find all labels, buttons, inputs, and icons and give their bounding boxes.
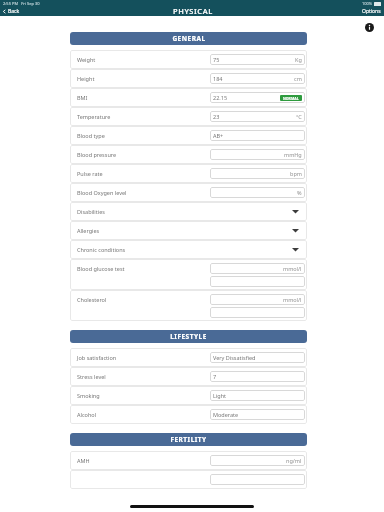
button[interactable]: 22.15 (210, 92, 305, 103)
staticText: Blood type (77, 132, 105, 139)
staticText: % (297, 189, 302, 196)
button[interactable]: bpm (210, 168, 305, 179)
staticText: 184 (213, 75, 223, 82)
button[interactable]: 75 (210, 54, 305, 65)
button[interactable]: Options (362, 6, 384, 16)
staticText: Temperature (77, 113, 111, 120)
staticText: mmol/l (283, 296, 302, 303)
staticText: GENERAL (172, 34, 206, 43)
staticText: °C (296, 113, 302, 120)
button[interactable]: Disabilities (70, 202, 307, 221)
button[interactable]: FERTILITY (70, 433, 307, 446)
button[interactable]: Height (70, 69, 307, 88)
button[interactable]: Blood pressure (70, 145, 307, 164)
staticText: Smoking (77, 392, 100, 399)
button[interactable]: 184 (210, 73, 305, 84)
staticText: Blood Oxygen level (77, 189, 127, 196)
staticText: NORMAL (283, 96, 299, 101)
button[interactable]: 23 (210, 111, 305, 122)
staticText: 23 (213, 113, 220, 120)
button[interactable]: Temperature (70, 107, 307, 126)
button[interactable]: mmol/l (210, 294, 305, 305)
staticText: AB+ (213, 132, 224, 139)
staticText: Chronic conditions (77, 246, 126, 253)
staticText: 75 (213, 56, 220, 63)
button[interactable]: LIFESTYLE (70, 330, 307, 343)
button[interactable]: 7 (210, 371, 305, 382)
button[interactable]: Moderate (210, 409, 305, 420)
button[interactable]: ng/ml (210, 455, 305, 466)
button[interactable]: AB+ (210, 130, 305, 141)
staticText: Height (77, 75, 95, 82)
button[interactable]: Alcohol (70, 405, 307, 424)
staticText: Options (362, 8, 381, 15)
button[interactable]: Cholesterol (70, 290, 307, 321)
staticText: mmHg (284, 151, 302, 158)
staticText: Pulse rate (77, 170, 103, 177)
staticText: PHYSICAL (173, 6, 213, 16)
staticText: Disabilities (77, 208, 105, 215)
button[interactable]: Back (0, 6, 24, 16)
staticText: 7 (213, 373, 217, 380)
staticText: Alcohol (77, 411, 97, 418)
button[interactable]: Job satisfaction (70, 348, 307, 367)
staticText: Light (213, 392, 227, 399)
button[interactable]: Chronic conditions (70, 240, 307, 259)
button[interactable] (70, 470, 307, 489)
staticText: Kg (295, 56, 302, 63)
button[interactable]: Blood Oxygen level (70, 183, 307, 202)
button[interactable]: Blood glucose test (70, 259, 307, 290)
button[interactable]: Allergies (70, 221, 307, 240)
staticText: BMI (77, 94, 88, 101)
staticText: Blood pressure (77, 151, 117, 158)
staticText: Weight (77, 56, 96, 63)
button[interactable]: AMH (70, 451, 307, 470)
button[interactable]: Pulse rate (70, 164, 307, 183)
button[interactable]: Stress level (70, 367, 307, 386)
staticText: LIFESTYLE (170, 332, 207, 341)
staticText: Blood glucose test (77, 265, 125, 272)
staticText: 2:55 PM Fri Sep 30 (3, 1, 40, 6)
button[interactable]: Information (363, 21, 375, 33)
staticText: Very Dissatisfied (213, 354, 256, 361)
staticText: Allergies (77, 227, 100, 234)
staticText: bpm (290, 170, 302, 177)
staticText: Cholesterol (77, 296, 107, 303)
staticText: Job satisfaction (77, 354, 117, 361)
button[interactable]: % (210, 187, 305, 198)
button[interactable]: mmol/l (210, 263, 305, 274)
staticText: ng/ml (286, 457, 302, 464)
button[interactable]: BMI (70, 88, 307, 107)
staticText: 22.15 (213, 94, 228, 101)
button[interactable]: Weight (70, 50, 307, 69)
button[interactable]: Very Dissatisfied (210, 352, 305, 363)
staticText: Stress level (77, 373, 106, 380)
button[interactable]: GENERAL (70, 32, 307, 45)
button[interactable] (210, 474, 305, 485)
button[interactable]: Blood type (70, 126, 307, 145)
staticText: cm (294, 75, 302, 82)
button[interactable]: Smoking (70, 386, 307, 405)
staticText: FERTILITY (170, 435, 207, 444)
staticText: AMH (77, 457, 90, 464)
staticText: 100% (362, 1, 373, 6)
button[interactable] (210, 307, 305, 318)
staticText: Back (8, 8, 20, 15)
button[interactable]: mmHg (210, 149, 305, 160)
button[interactable] (210, 276, 305, 287)
staticText: Moderate (213, 411, 239, 418)
button[interactable]: Light (210, 390, 305, 401)
staticText: mmol/l (283, 265, 302, 272)
